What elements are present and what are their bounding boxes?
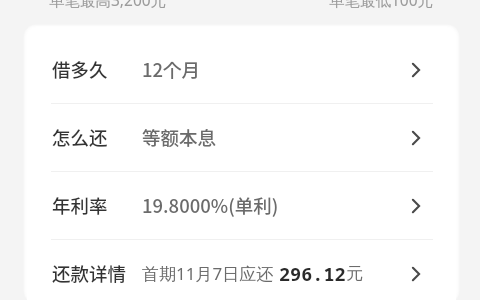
staticText: 还款详情 <box>52 260 127 287</box>
staticText: 首期11月7日应还 <box>142 262 274 285</box>
button[interactable]: 怎么还 <box>27 104 456 171</box>
staticText: 12个月 <box>142 56 201 83</box>
staticText: 单笔最低100元 <box>329 0 434 10</box>
staticText: 元 <box>346 263 363 284</box>
staticText: 单笔最高3,200元 <box>49 0 167 10</box>
staticText: 等额本息 <box>142 124 217 151</box>
button[interactable]: 年利率 <box>27 172 456 239</box>
staticText: 年利率 <box>52 192 108 219</box>
staticText: 296.12 <box>279 261 346 286</box>
button[interactable]: 借多久 <box>27 36 456 103</box>
staticText: 借多久 <box>52 56 108 83</box>
staticText: 19.8000%(单利) <box>142 192 279 219</box>
staticText: 怎么还 <box>52 124 108 151</box>
button[interactable]: 还款详情 <box>27 240 456 300</box>
